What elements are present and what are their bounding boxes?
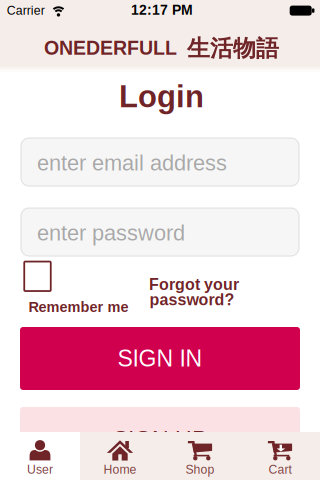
staticText: Forgot your bbox=[149, 276, 239, 293]
staticText: Home bbox=[103, 463, 136, 476]
staticText: Login bbox=[119, 79, 204, 114]
staticText: enter password bbox=[37, 221, 185, 245]
button[interactable]: Forgot your bbox=[148, 274, 248, 310]
staticText: 生活物語 bbox=[187, 34, 279, 63]
button[interactable]: enter password bbox=[21, 208, 299, 256]
staticText: Cart bbox=[268, 463, 291, 476]
staticText: Remember me bbox=[28, 299, 128, 315]
button[interactable]: Cart bbox=[240, 432, 320, 480]
button[interactable]: User bbox=[0, 432, 80, 480]
button[interactable]: Home bbox=[80, 432, 160, 480]
button[interactable]: enter email address bbox=[21, 138, 299, 186]
button[interactable]: Shop bbox=[160, 432, 240, 480]
button[interactable]: SIGN UP bbox=[20, 407, 300, 470]
staticText: ONEDERFULL bbox=[44, 37, 177, 59]
staticText: SIGN UP bbox=[113, 427, 207, 453]
staticText: enter email address bbox=[37, 151, 227, 175]
staticText: 12:17 PM bbox=[131, 2, 193, 18]
staticText: User bbox=[27, 463, 53, 476]
button[interactable]: SIGN IN bbox=[20, 327, 300, 390]
button[interactable]: Remember me bbox=[23, 260, 127, 314]
staticText: SIGN IN bbox=[117, 346, 202, 371]
staticText: password? bbox=[149, 291, 234, 309]
staticText: Shop bbox=[185, 463, 214, 476]
staticText: Carrier bbox=[7, 4, 45, 17]
